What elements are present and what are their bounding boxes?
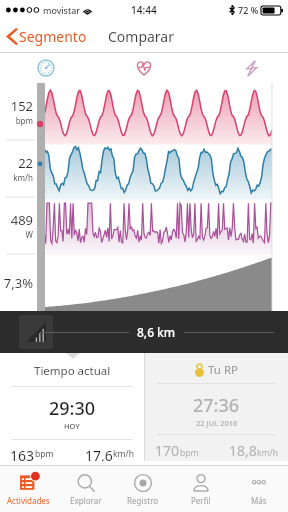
staticText: 27:36 — [193, 393, 240, 418]
button[interactable]: Perfil — [172, 466, 230, 512]
staticText: Actividades — [7, 495, 50, 506]
staticText: Perfil — [191, 495, 211, 506]
staticText: Tiempo actual — [34, 363, 111, 379]
staticText: 22 — [18, 154, 33, 172]
staticText: Explorar — [70, 495, 102, 506]
staticText: movistar — [43, 4, 80, 16]
staticText: 14:44 — [131, 3, 157, 17]
staticText: Comparar — [108, 27, 175, 46]
staticText: bpm — [15, 115, 33, 126]
button[interactable]: Actividades — [0, 466, 57, 512]
button[interactable]: Segmento — [7, 27, 87, 46]
button[interactable]: Cadence — [37, 59, 55, 77]
staticText: bpm — [35, 448, 54, 460]
button[interactable]: Chart options — [19, 315, 53, 349]
staticText: 29:30 — [49, 396, 96, 421]
staticText: 18,8 — [229, 441, 257, 460]
button[interactable]: Tu RP — [145, 353, 288, 461]
staticText: 8,6 km — [137, 324, 176, 340]
staticText: Registro — [127, 495, 159, 506]
staticText: km/h — [13, 172, 33, 183]
staticText: 163 — [10, 446, 35, 461]
staticText: 170 — [155, 441, 180, 460]
staticText: bpm — [180, 447, 199, 459]
staticText: Tu RP — [208, 362, 239, 378]
staticText: 72 % — [238, 4, 259, 16]
staticText: 22 JUL 2016 — [196, 418, 238, 428]
staticText: 17,6 — [85, 446, 113, 461]
button[interactable]: Tiempo actual — [0, 353, 144, 461]
staticText: km/h — [113, 448, 134, 460]
staticText: W — [25, 229, 33, 240]
button[interactable]: Registro — [114, 466, 172, 512]
staticText: Segmento — [19, 27, 87, 46]
staticText: HOY — [64, 421, 80, 431]
staticText: 7,3% — [3, 274, 33, 292]
button[interactable]: Heart rate — [135, 59, 153, 77]
button[interactable]: Explorar — [57, 466, 114, 512]
staticText: km/h — [257, 447, 278, 459]
button[interactable]: Power — [243, 60, 260, 77]
staticText: 152 — [10, 97, 33, 115]
staticText: Más — [251, 495, 267, 506]
button[interactable]: Más — [230, 466, 288, 512]
staticText: 489 — [10, 211, 33, 229]
